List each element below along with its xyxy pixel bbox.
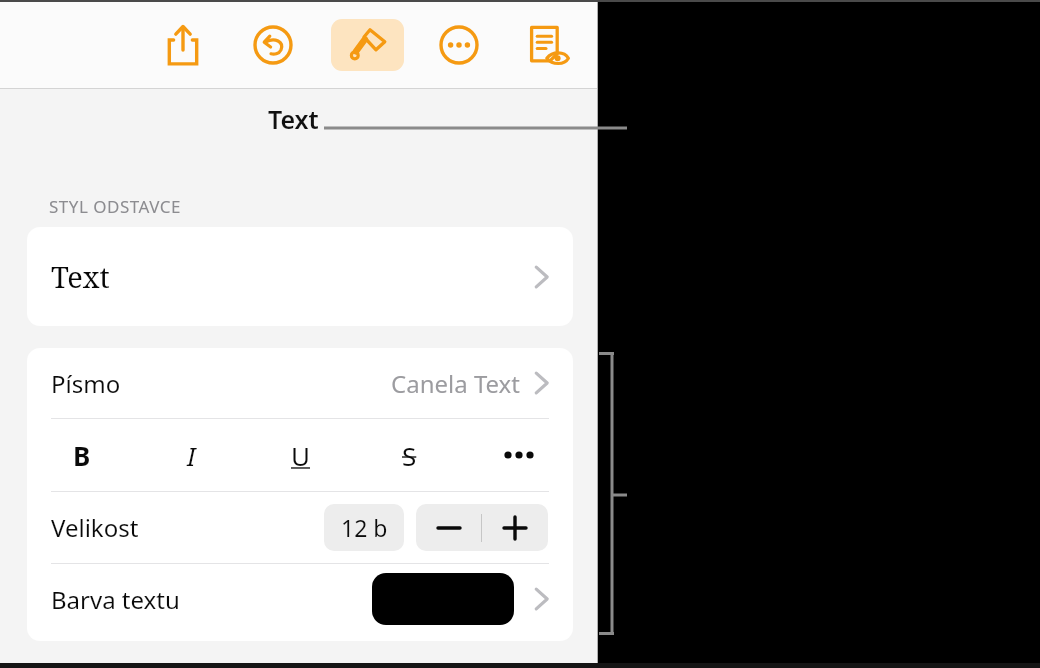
staticText: Velikost xyxy=(51,511,139,544)
button[interactable]: Barva textu xyxy=(27,564,573,634)
button[interactable]: Písmo xyxy=(27,348,573,418)
button[interactable]: Decrease font size xyxy=(416,504,481,551)
button[interactable]: More text styles xyxy=(464,419,573,491)
button[interactable]: Undo xyxy=(247,19,299,71)
button[interactable]: More options xyxy=(433,19,485,71)
staticText: 12 b xyxy=(341,512,388,543)
staticText: Canela Text xyxy=(391,367,520,400)
button[interactable]: Document setup xyxy=(520,19,572,71)
staticText: S xyxy=(402,438,417,473)
button[interactable]: S xyxy=(355,419,464,491)
staticText: Barva textu xyxy=(51,583,180,616)
button[interactable]: 12 b xyxy=(324,504,404,551)
button[interactable]: Text xyxy=(27,227,573,326)
staticText: B xyxy=(73,438,91,473)
button[interactable]: B xyxy=(27,419,137,491)
button[interactable]: Increase font size xyxy=(482,504,548,551)
staticText: Text xyxy=(51,257,110,296)
staticText: Písmo xyxy=(51,367,121,400)
staticText: U xyxy=(291,438,311,473)
button[interactable]: Share xyxy=(157,19,209,71)
staticText: Text xyxy=(268,102,319,136)
staticText: STYL ODSTAVCE xyxy=(49,195,181,218)
button[interactable]: U xyxy=(246,419,355,491)
staticText: I xyxy=(187,438,196,473)
button[interactable]: Format xyxy=(331,19,404,71)
button[interactable]: I xyxy=(137,419,246,491)
